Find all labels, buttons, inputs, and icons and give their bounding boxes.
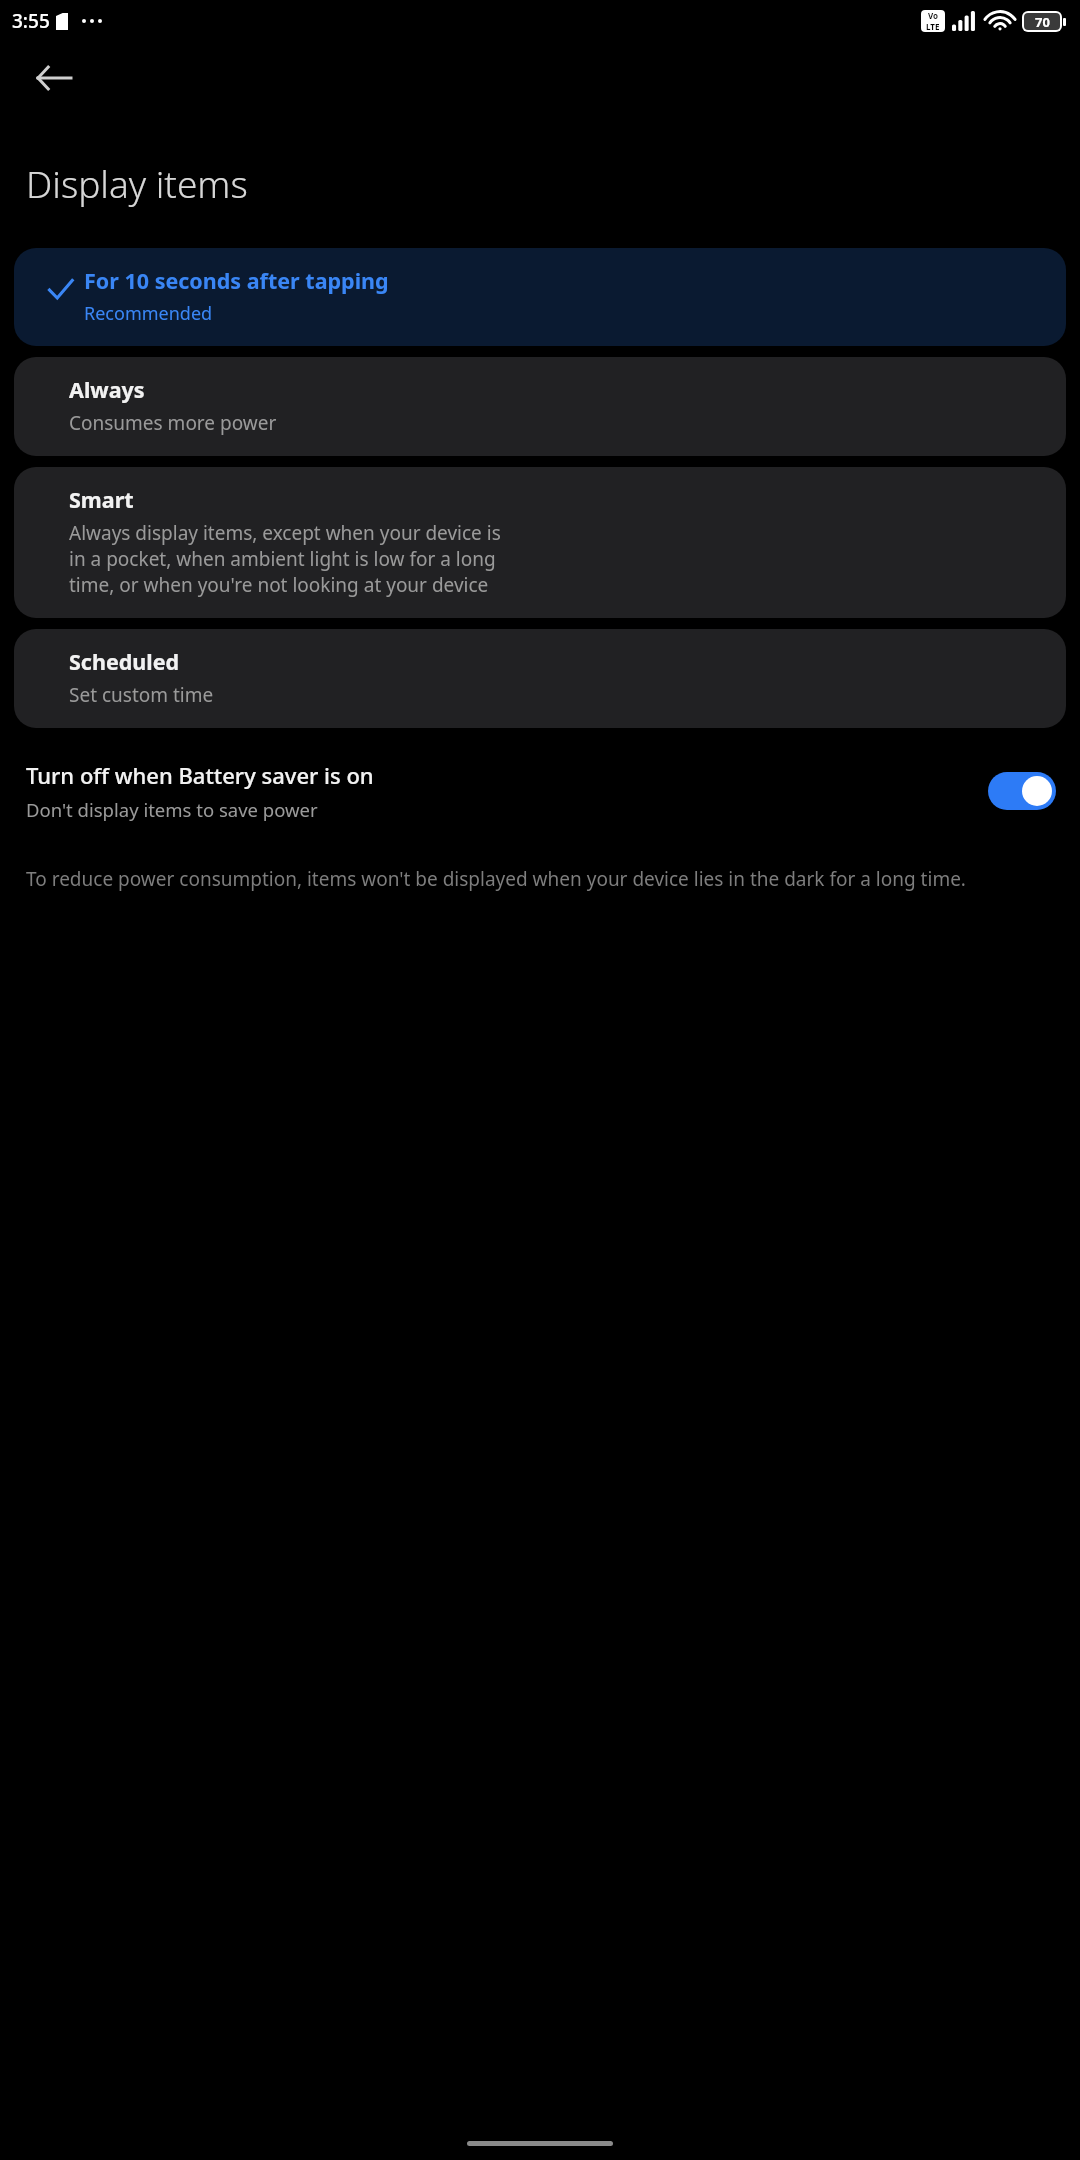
staticText: time, or when you're not looking at your… — [69, 572, 489, 598]
staticText: 3:55 — [12, 8, 50, 34]
button[interactable]: Smart — [14, 467, 1066, 618]
staticText: Scheduled — [69, 647, 180, 676]
button[interactable]: Back — [26, 50, 82, 106]
staticText: Consumes more power — [69, 410, 277, 436]
button[interactable]: Turn off when Battery saver is on — [0, 754, 1080, 828]
staticText: Display items — [26, 158, 248, 208]
staticText: Smart — [69, 485, 134, 514]
staticText: Always — [69, 375, 145, 404]
staticText: in a pocket, when ambient light is low f… — [69, 546, 496, 572]
staticText: 70 — [1035, 13, 1050, 30]
button[interactable]: Always — [14, 357, 1066, 456]
staticText: LTE — [926, 21, 940, 32]
button[interactable]: Turn off when Battery saver is on toggle — [988, 772, 1056, 810]
staticText: To reduce power consumption, items won't… — [26, 866, 966, 892]
button[interactable]: Scheduled — [14, 629, 1066, 728]
staticText: Recommended — [84, 301, 213, 326]
staticText: Set custom time — [69, 682, 214, 708]
staticText: For 10 seconds after tapping — [84, 266, 389, 295]
staticText: Don't display items to save power — [26, 797, 318, 822]
staticText: Always display items, except when your d… — [69, 520, 501, 546]
staticText: Turn off when Battery saver is on — [26, 760, 374, 790]
button[interactable]: For 10 seconds after tapping — [14, 248, 1066, 346]
staticText: Vo — [928, 10, 939, 21]
